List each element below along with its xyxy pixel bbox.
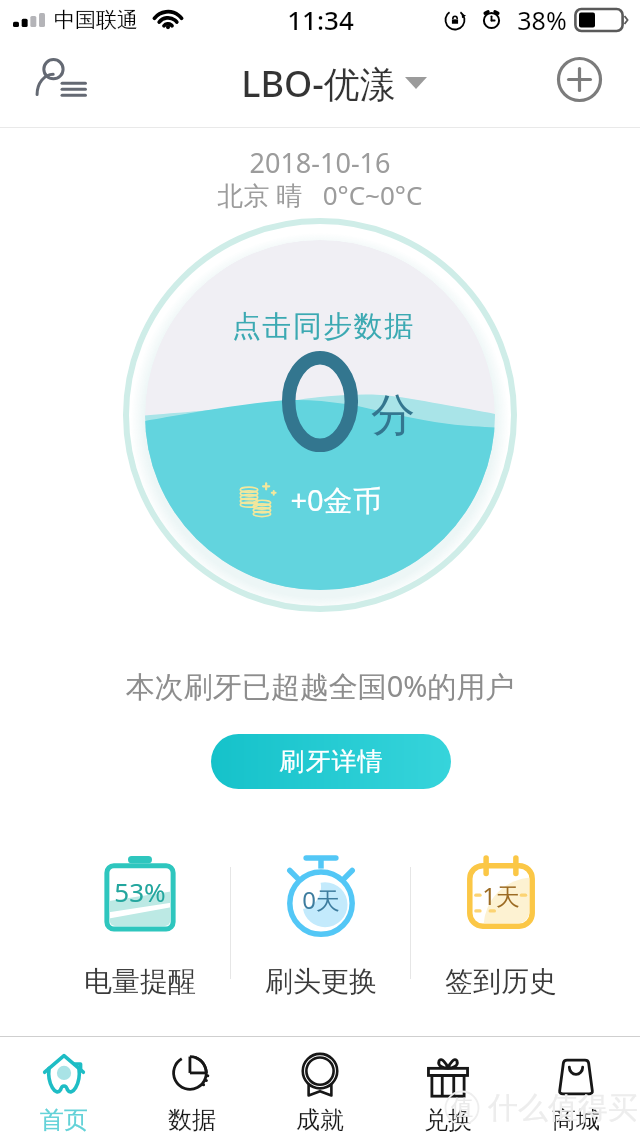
button[interactable]: 1天 xyxy=(411,835,590,1010)
staticText: 商城 xyxy=(552,1105,600,1135)
staticText: 11:34 xyxy=(287,2,354,37)
staticText: 本次刷牙已超越全国0%的用户 xyxy=(0,666,640,706)
staticText: 兑换 xyxy=(424,1105,472,1135)
staticText: 中国联通 xyxy=(54,7,138,33)
staticText: 2018-10-16 xyxy=(0,144,640,181)
button[interactable]: 首页 xyxy=(0,1037,128,1136)
staticText: 1天 xyxy=(482,879,520,912)
button[interactable]: 0天 xyxy=(231,835,410,1010)
button[interactable]: 商城 xyxy=(512,1037,640,1136)
button[interactable]: Profile menu xyxy=(26,48,96,118)
staticText: 刷头更换 xyxy=(265,964,377,999)
staticText: 成就 xyxy=(296,1105,344,1135)
staticText: 值 xyxy=(451,1094,473,1122)
button[interactable]: 兑换 xyxy=(384,1037,512,1136)
staticText: 首页 xyxy=(40,1105,88,1135)
staticText: 北京 晴 0°C~0°C xyxy=(0,177,640,213)
staticText: 点击同步数据 xyxy=(231,308,414,345)
button[interactable]: 成就 xyxy=(256,1037,384,1136)
staticText: 0天 xyxy=(302,883,340,916)
button[interactable]: 刷牙详情 xyxy=(211,734,451,789)
button[interactable]: 53% xyxy=(50,835,230,1010)
staticText: 分 xyxy=(371,388,415,443)
staticText: 刷牙详情 xyxy=(279,746,383,777)
staticText: LBO-优漾 xyxy=(241,59,396,108)
button[interactable]: 数据 xyxy=(128,1037,256,1136)
staticText: 数据 xyxy=(168,1105,216,1135)
staticText: +0金币 xyxy=(290,480,382,520)
staticText: 38% xyxy=(517,3,567,37)
staticText: 电量提醒 xyxy=(84,964,196,999)
staticText: 签到历史 xyxy=(445,964,557,999)
staticText: 什么值得买 xyxy=(488,1089,638,1127)
button[interactable]: Add device xyxy=(551,51,607,107)
staticText: 53% xyxy=(114,874,166,909)
